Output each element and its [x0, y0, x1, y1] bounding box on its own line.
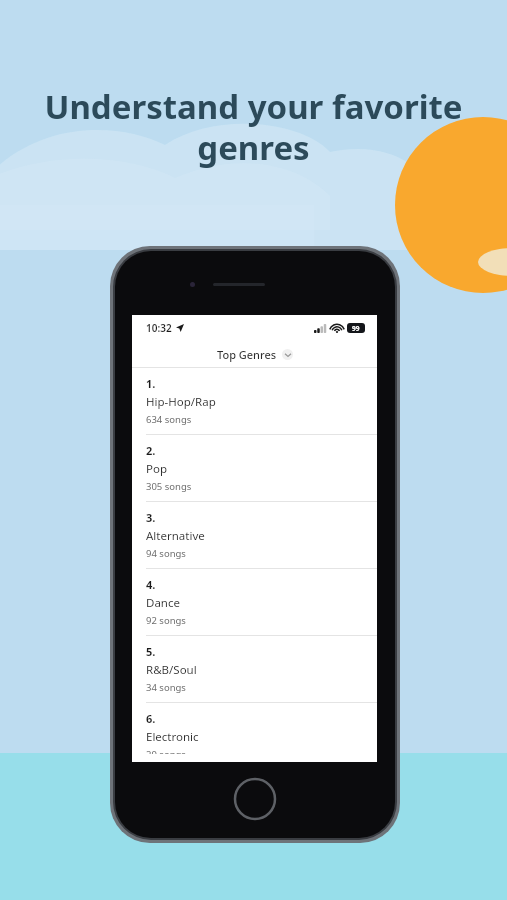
- staticText: Alternative: [146, 528, 205, 544]
- button[interactable]: 4.: [132, 569, 377, 635]
- staticText: 4.: [146, 577, 156, 592]
- staticText: 3.: [146, 510, 156, 525]
- button[interactable]: 2.: [132, 435, 377, 501]
- button[interactable]: 5.: [132, 636, 377, 702]
- button[interactable]: Home: [233, 777, 277, 821]
- staticText: 1.: [146, 376, 156, 391]
- staticText: Pop: [146, 461, 167, 477]
- staticText: 2.: [146, 443, 156, 458]
- staticText: 99: [352, 324, 360, 333]
- staticText: Dance: [146, 595, 180, 611]
- staticText: 305 songs: [146, 480, 192, 493]
- staticText: 34 songs: [146, 681, 186, 694]
- staticText: Understand your favorite genres: [44, 84, 463, 170]
- staticText: R&B/Soul: [146, 662, 197, 678]
- button[interactable]: Top Genres: [132, 341, 377, 367]
- button[interactable]: 3.: [132, 502, 377, 568]
- staticText: 92 songs: [146, 614, 186, 627]
- staticText: 634 songs: [146, 413, 192, 426]
- button[interactable]: 6.: [132, 703, 377, 762]
- staticText: Hip-Hop/Rap: [146, 394, 216, 410]
- staticText: 5.: [146, 644, 156, 659]
- staticText: 6.: [146, 711, 156, 726]
- staticText: Top Genres: [217, 347, 277, 362]
- staticText: Electronic: [146, 729, 199, 745]
- staticText: 10:32: [146, 321, 172, 335]
- button[interactable]: 1.: [132, 368, 377, 434]
- staticText: 29 songs: [146, 748, 186, 754]
- staticText: 94 songs: [146, 547, 186, 560]
